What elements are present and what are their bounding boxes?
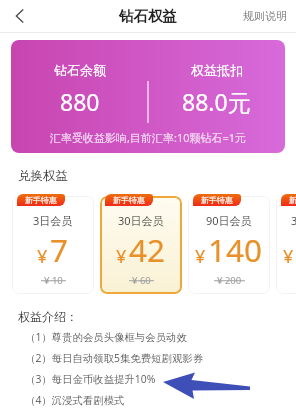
staticText: ¥ bbox=[116, 244, 127, 269]
staticText: ¥ 60 bbox=[132, 274, 151, 287]
staticText: 新手特惠 bbox=[113, 195, 145, 205]
staticText: 90日会员 bbox=[206, 213, 252, 228]
button[interactable]: 规则说明 bbox=[241, 5, 289, 27]
staticText: 权益抵扣 bbox=[191, 62, 243, 78]
staticText: （4）沉浸式看剧模式 bbox=[25, 393, 125, 407]
staticText: （3）每日金币收益提升10% bbox=[25, 372, 156, 386]
staticText: 880 bbox=[60, 86, 100, 117]
staticText: 新手特惠 bbox=[25, 195, 57, 205]
button[interactable]: 365日会员 bbox=[276, 196, 296, 294]
button[interactable]: 90日会员 bbox=[188, 196, 270, 294]
button[interactable]: 30日会员 bbox=[100, 196, 182, 294]
staticText: ¥ bbox=[195, 244, 206, 269]
staticText: 30日会员 bbox=[118, 213, 164, 228]
staticText: 140 bbox=[208, 228, 263, 271]
staticText: ¥ 200 bbox=[217, 274, 242, 287]
staticText: 新手特惠 bbox=[201, 195, 233, 205]
staticText: 钻石余额 bbox=[54, 62, 106, 78]
staticText: 88.0元 bbox=[182, 86, 251, 117]
staticText: ¥ 10 bbox=[44, 274, 63, 287]
button[interactable]: 3日会员 bbox=[12, 196, 94, 294]
staticText: 3日会员 bbox=[33, 213, 73, 228]
staticText: 7 bbox=[50, 228, 69, 271]
button[interactable]: Back bbox=[0, 0, 34, 32]
staticText: 规则说明 bbox=[243, 9, 287, 23]
staticText: （1）尊贵的会员头像框与会员动效 bbox=[25, 330, 187, 344]
staticText: ¥ bbox=[37, 244, 48, 269]
staticText: （2）每日自动领取5集免费短剧观影券 bbox=[25, 351, 204, 365]
staticText: ¥ bbox=[283, 244, 294, 269]
staticText: 汇率受收益影响,目前汇率:10颗钻石=1元 bbox=[50, 130, 247, 145]
staticText: 365日会员 bbox=[291, 213, 296, 228]
staticText: 新手特惠 bbox=[289, 195, 296, 205]
staticText: 权益介绍： bbox=[18, 309, 78, 324]
staticText: 钻石权益 bbox=[119, 7, 177, 25]
staticText: 兑换权益 bbox=[18, 168, 68, 184]
staticText: 42 bbox=[129, 228, 166, 271]
